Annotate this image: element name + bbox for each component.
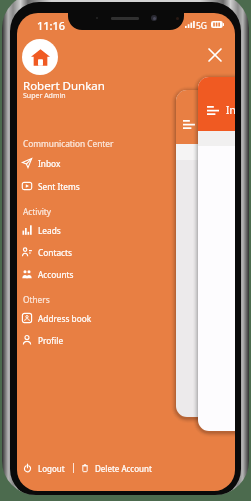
staticText: Communication Center xyxy=(23,138,114,149)
button[interactable]: Sent Items xyxy=(18,176,154,196)
staticText: Contacts xyxy=(38,247,72,258)
staticText: Address book xyxy=(38,313,92,324)
staticText: Super Admin xyxy=(23,91,66,101)
staticText: Inbox xyxy=(226,103,235,117)
staticText: Leads xyxy=(38,225,61,236)
button[interactable]: Delete Account xyxy=(78,461,156,475)
staticText: Sent Items xyxy=(38,181,80,192)
button[interactable]: Profile xyxy=(18,330,154,350)
staticText: Robert Dunkan xyxy=(23,78,105,94)
staticText: Profile xyxy=(38,335,64,346)
button[interactable]: Close navigation drawer xyxy=(203,43,226,66)
button[interactable]: Leads xyxy=(18,220,154,240)
staticText: Logout xyxy=(38,463,65,474)
staticText: Delete Account xyxy=(95,463,152,474)
staticText: Others xyxy=(23,294,50,305)
button[interactable]: Contacts xyxy=(18,242,154,262)
staticText: Activity xyxy=(23,206,52,217)
staticText: 11:16 xyxy=(37,18,66,33)
staticText: Inbox xyxy=(38,158,61,169)
button[interactable]: Accounts xyxy=(18,264,154,284)
staticText: Accounts xyxy=(38,269,74,280)
button[interactable]: Inbox xyxy=(18,153,154,173)
staticText: 5G xyxy=(196,20,208,32)
button[interactable]: Logout xyxy=(21,461,69,475)
button[interactable]: Address book xyxy=(18,308,154,328)
